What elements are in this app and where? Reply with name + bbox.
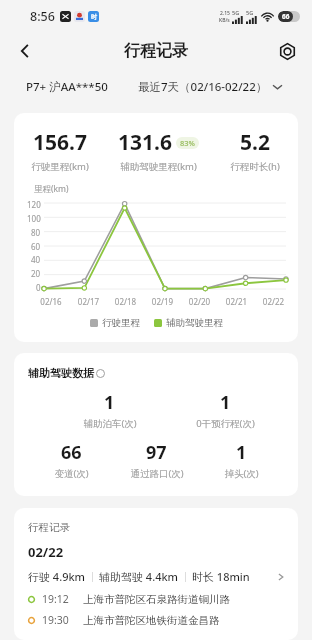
staticText: 97: [146, 440, 167, 465]
staticText: 行驶里程(km): [31, 160, 89, 173]
staticText: 0干预行程(次): [196, 417, 255, 430]
staticText: 02/18: [107, 296, 144, 307]
staticText: 02/22: [28, 543, 64, 561]
staticText: 19:30: [42, 613, 69, 627]
staticText: 02/16: [32, 296, 70, 307]
staticText: 1: [220, 390, 231, 415]
staticText: 83%: [180, 138, 195, 148]
staticText: 40: [31, 254, 41, 265]
staticText: P7+ 沪AA***50: [26, 79, 108, 95]
staticText: 80: [31, 227, 41, 238]
staticText: 里程(km): [34, 183, 69, 195]
staticText: 5G: [246, 9, 254, 16]
staticText: 最近7天（02/16-02/22）: [138, 79, 268, 95]
button[interactable]: 行驶 4.9km: [24, 569, 288, 627]
button[interactable]: P7+ 沪AA***50: [26, 79, 108, 95]
staticText: 行程记录: [124, 41, 188, 61]
staticText: 02/20: [181, 296, 218, 307]
staticText: KB/s: [219, 17, 230, 24]
staticText: 行驶里程: [102, 317, 140, 329]
staticText: 131.6: [118, 128, 172, 157]
staticText: 19:12: [42, 592, 69, 606]
staticText: 辅助驾驶数据: [28, 366, 94, 380]
button[interactable]: Settings: [272, 36, 302, 66]
staticText: 时长 18min: [192, 569, 250, 584]
button[interactable]: 辅助驾驶数据: [28, 366, 105, 380]
staticText: 行程时长(h): [230, 160, 280, 173]
staticText: 辅助驾驶 4.4km: [99, 569, 179, 584]
staticText: 66: [282, 12, 290, 21]
staticText: 掉头(次): [224, 467, 259, 480]
staticText: 02/22: [255, 296, 292, 307]
staticText: 变道(次): [54, 467, 89, 480]
staticText: 100: [27, 213, 41, 224]
staticText: 8:56: [30, 8, 55, 25]
staticText: 1: [236, 440, 247, 465]
staticText: 02/19: [144, 296, 181, 307]
staticText: 120: [27, 199, 41, 210]
staticText: 上海市普陀区石泉路街道铜川路: [83, 593, 230, 606]
staticText: 时: [91, 13, 97, 21]
staticText: 辅助驾驶里程: [166, 317, 223, 329]
staticText: 1: [104, 390, 115, 415]
staticText: 02/17: [70, 296, 107, 307]
staticText: 5.2: [240, 128, 270, 157]
button[interactable]: Back: [8, 34, 42, 68]
staticText: 辅助泊车(次): [83, 417, 137, 430]
staticText: 0: [36, 282, 41, 293]
staticText: 156.7: [33, 128, 87, 157]
staticText: 2.15: [220, 10, 230, 17]
staticText: 20: [31, 268, 41, 279]
staticText: 66: [61, 440, 82, 465]
button[interactable]: 最近7天（02/16-02/22）: [138, 79, 282, 95]
staticText: 行程记录: [28, 521, 70, 534]
staticText: 上海市普陀区地铁街道金昌路: [83, 614, 220, 627]
staticText: 行驶 4.9km: [28, 569, 86, 584]
staticText: 02/21: [218, 296, 255, 307]
staticText: 60: [31, 241, 41, 252]
staticText: 通过路口(次): [130, 467, 184, 480]
staticText: 5G: [232, 9, 240, 16]
staticText: 辅助驾驶里程(km): [120, 160, 197, 173]
